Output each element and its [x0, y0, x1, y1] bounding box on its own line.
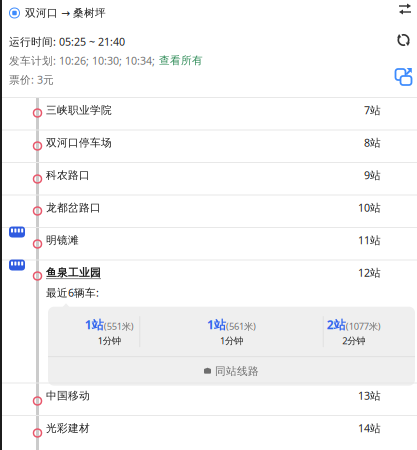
button[interactable]: 光彩建材 — [0, 415, 417, 447]
staticText: 三峡职业学院 — [46, 103, 112, 117]
button[interactable]: 鱼泉工业园 — [0, 259, 417, 382]
staticText: 光彩建材 — [46, 421, 90, 435]
staticText: 明镜滩 — [46, 233, 79, 247]
staticText: 8站 — [364, 135, 381, 150]
staticText: 中国移动 — [46, 389, 90, 402]
button[interactable]: Route map — [395, 67, 413, 85]
button[interactable]: 明镜滩 — [0, 227, 417, 259]
staticText: 13站 — [358, 388, 381, 403]
button[interactable]: Reverse direction — [398, 2, 412, 15]
button[interactable]: 中国移动 — [0, 382, 417, 415]
staticText: 12站 — [358, 265, 381, 280]
button[interactable]: 同站线路 — [48, 357, 415, 385]
staticText: (1077米) — [346, 320, 381, 332]
staticText: 查看所有 — [159, 54, 203, 67]
staticText: (551米) — [104, 320, 134, 332]
staticText: 2分钟 — [342, 334, 365, 347]
staticText: 1分钟 — [98, 334, 121, 347]
staticText: 同站线路 — [215, 365, 259, 378]
button[interactable]: Refresh — [396, 33, 410, 47]
staticText: 科农路口 — [46, 168, 90, 182]
staticText: 双河口 → 桑树坪 — [25, 6, 106, 19]
staticText: 双河口停车场 — [46, 136, 112, 149]
staticText: 1站 — [207, 316, 226, 332]
button[interactable]: 龙都岔路口 — [0, 194, 417, 227]
staticText: 鱼泉工业园 — [46, 266, 101, 279]
staticText: 运行时间: 05:25 ~ 21:40 — [9, 34, 125, 49]
button[interactable]: 三峡职业学院 — [0, 97, 417, 129]
staticText: 2站 — [327, 316, 346, 332]
staticText: 10站 — [358, 200, 381, 215]
staticText: 1分钟 — [220, 334, 243, 347]
staticText: (561米) — [226, 320, 256, 332]
staticText: 11站 — [358, 233, 381, 247]
button[interactable]: 科农路口 — [0, 162, 417, 194]
button[interactable]: 双河口停车场 — [0, 129, 417, 162]
staticText: 7站 — [364, 103, 381, 117]
staticText: 1站 — [85, 316, 104, 332]
staticText: 9站 — [364, 168, 381, 182]
staticText: 发车计划: 10:26; 10:30; 10:34; — [9, 53, 155, 68]
staticText: 最近6辆车: — [46, 285, 99, 300]
staticText: 龙都岔路口 — [46, 201, 101, 214]
button[interactable]: 查看所有 — [159, 54, 203, 67]
staticText: 票价: 3元 — [9, 72, 54, 87]
staticText: 14站 — [358, 421, 381, 435]
